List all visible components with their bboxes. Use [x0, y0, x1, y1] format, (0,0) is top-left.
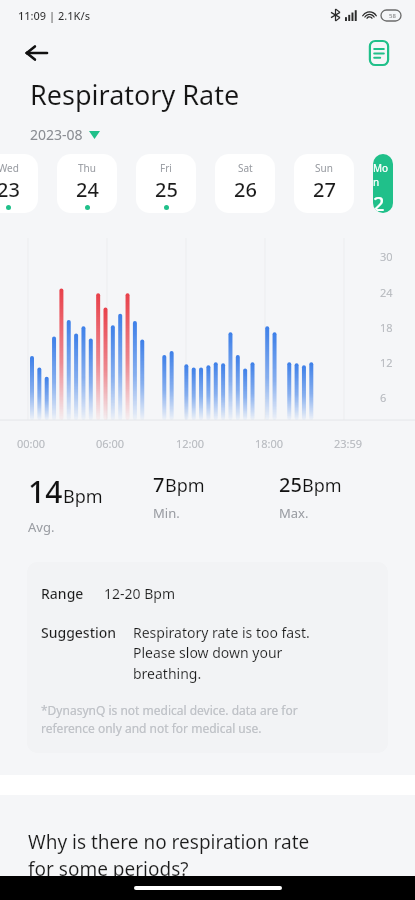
- staticText: Mon: [373, 161, 393, 189]
- staticText: Sun: [315, 161, 333, 175]
- staticText: Respiratory Rate: [30, 76, 240, 113]
- staticText: Bpm: [302, 473, 342, 498]
- staticText: Respiratory rate is too fast. Please slo…: [133, 623, 310, 684]
- staticText: Bpm: [165, 473, 205, 498]
- staticText: 18: [380, 320, 393, 335]
- staticText: 28: [373, 190, 393, 213]
- staticText: Max.: [279, 504, 309, 522]
- button[interactable]: Sat: [215, 154, 275, 213]
- staticText: Suggestion: [41, 623, 117, 642]
- button[interactable]: Back: [14, 31, 58, 75]
- staticText: 26: [234, 176, 257, 203]
- staticText: 18:00: [255, 436, 284, 451]
- staticText: 12: [380, 355, 393, 370]
- button[interactable]: Mon: [373, 154, 393, 213]
- button[interactable]: Range: [27, 562, 388, 753]
- button[interactable]: Fri: [136, 154, 196, 213]
- staticText: 11:09 | 2.1K/s: [18, 8, 91, 23]
- staticText: 14: [28, 471, 63, 512]
- staticText: 58: [389, 12, 396, 20]
- staticText: 25: [155, 176, 178, 203]
- staticText: *DynasynQ is not medical device. data ar…: [41, 702, 298, 737]
- staticText: Thu: [78, 161, 96, 175]
- staticText: Avg.: [28, 518, 55, 536]
- staticText: 00:00: [17, 436, 46, 451]
- staticText: Sat: [238, 161, 253, 175]
- staticText: Range: [41, 584, 84, 603]
- staticText: 2023-08: [30, 125, 83, 144]
- staticText: 23: [0, 176, 20, 203]
- staticText: 24: [380, 285, 393, 300]
- staticText: 6: [380, 390, 387, 405]
- staticText: 12:00: [176, 436, 205, 451]
- button[interactable]: Wed: [0, 154, 38, 213]
- staticText: 23:59: [334, 436, 363, 451]
- staticText: Bpm: [63, 484, 103, 509]
- staticText: Why is there no respiration rate for som…: [28, 829, 310, 876]
- staticText: 06:00: [96, 436, 125, 451]
- staticText: 12-20 Bpm: [104, 584, 175, 603]
- staticText: Wed: [0, 161, 19, 175]
- button[interactable]: Thu: [57, 154, 117, 213]
- button[interactable]: Records: [359, 33, 399, 73]
- staticText: 30: [380, 249, 393, 264]
- staticText: Min.: [153, 504, 180, 522]
- staticText: 25: [279, 471, 302, 498]
- staticText: 24: [76, 176, 99, 203]
- button[interactable]: Sun: [294, 154, 354, 213]
- button[interactable]: 2023-08: [30, 125, 100, 144]
- staticText: 27: [313, 176, 336, 203]
- staticText: Fri: [160, 161, 172, 175]
- staticText: 7: [153, 471, 165, 498]
